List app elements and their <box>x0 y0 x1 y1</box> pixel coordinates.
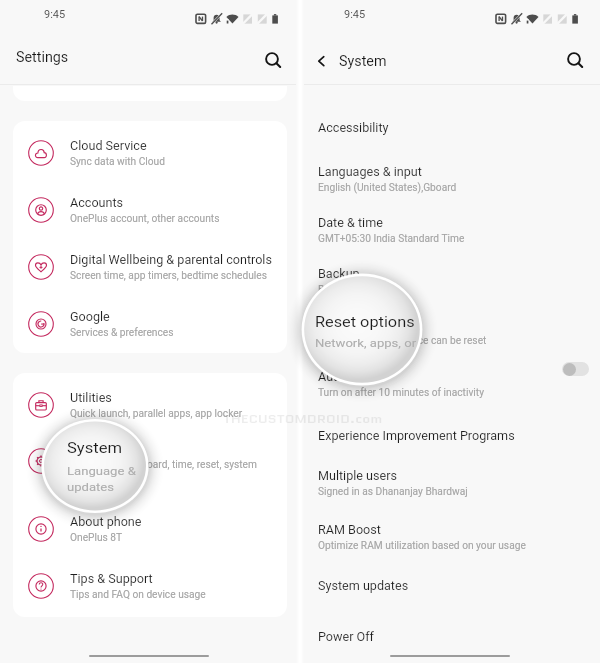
staticText: Screen time, app timers, bedtime schedul… <box>70 270 267 282</box>
staticText: Reset options <box>315 314 415 331</box>
button[interactable]: Experience Improvement Programs <box>300 418 600 448</box>
staticText: Cloud Service <box>70 138 147 153</box>
button[interactable]: Accounts <box>13 185 287 229</box>
staticText: Utilities <box>70 390 112 405</box>
staticText: Back up data <box>318 284 377 296</box>
button[interactable]: Multiple users <box>300 458 600 500</box>
button[interactable]: Back <box>308 45 336 73</box>
staticText: Reset options <box>318 317 395 332</box>
staticText: English (United States),Gboard <box>318 182 457 194</box>
button[interactable]: Power Off <box>300 619 600 649</box>
staticText: Tips & Support <box>70 571 153 586</box>
staticText: Settings <box>16 49 69 66</box>
button[interactable]: Reset options <box>300 307 600 349</box>
staticText: Accounts <box>70 195 124 210</box>
staticText: Accessibility <box>318 120 389 135</box>
staticText: Turn on after 10 minutes of inactivity <box>318 387 484 399</box>
button[interactable]: Utilities <box>13 380 287 424</box>
staticText: Language & keyboard, time, reset, system <box>67 464 146 477</box>
staticText: System <box>67 440 123 457</box>
staticText: Languages & input <box>318 164 422 179</box>
button[interactable]: Google <box>13 299 287 343</box>
button[interactable]: Tips & Support <box>13 561 287 605</box>
staticText: THECUSTOMDROID.com <box>223 410 383 428</box>
staticText: Quick launch, parallel apps, app locker <box>70 408 243 420</box>
staticText: Experience Improvement Programs <box>318 428 515 443</box>
staticText: System <box>339 53 387 70</box>
staticText: Network, apps, or device can be reset <box>315 336 420 349</box>
staticText: System updates <box>318 578 409 593</box>
button[interactable]: Digital Wellbeing & parental controls <box>13 242 287 286</box>
button[interactable]: Cloud Service <box>13 128 287 172</box>
staticText: updates <box>70 472 107 484</box>
staticText: Digital Wellbeing & parental controls <box>70 252 272 267</box>
staticText: OnePlus 8T <box>70 532 123 544</box>
staticText: Auto Sleep <box>318 369 379 384</box>
staticText: Google <box>70 309 110 324</box>
staticText: 9:45 <box>44 8 66 21</box>
staticText: 9:45 <box>344 8 366 21</box>
staticText: OnePlus account, other accounts <box>70 213 220 225</box>
button[interactable]: System <box>13 431 287 487</box>
button[interactable]: Auto Sleep <box>300 359 600 401</box>
button[interactable]: Auto Sleep toggle <box>562 362 589 376</box>
staticText: Backup <box>318 266 360 281</box>
staticText: Language & keyboard, time, reset, system <box>70 459 257 471</box>
staticText: System <box>70 441 112 456</box>
staticText: Services & preferences <box>70 327 174 339</box>
staticText: About phone <box>70 514 142 529</box>
button[interactable]: Accessibility <box>300 110 600 140</box>
staticText: Date & time <box>318 215 383 230</box>
staticText: Tips and FAQ on device usage <box>70 589 206 601</box>
staticText: GMT+05:30 India Standard Time <box>318 233 465 245</box>
button[interactable]: RAM Boost <box>300 512 600 554</box>
staticText: Multiple users <box>318 468 398 483</box>
button[interactable]: Date & time <box>300 205 600 247</box>
staticText: Signed in as Dhananjay Bhardwaj <box>318 486 468 498</box>
staticText: RAM Boost <box>318 522 381 537</box>
staticText: Sync data with Cloud <box>70 156 165 168</box>
button[interactable]: Search <box>560 45 588 73</box>
button[interactable]: Languages & input <box>300 154 600 196</box>
staticText: Power Off <box>318 629 375 644</box>
button[interactable]: Backup <box>300 256 600 298</box>
button[interactable]: Search <box>258 45 286 73</box>
staticText: Network, apps, or device can be reset <box>318 335 487 347</box>
button[interactable]: System updates <box>300 568 600 598</box>
staticText: Optimize RAM utilization based on your u… <box>318 540 526 552</box>
staticText: updates <box>67 480 115 493</box>
button[interactable]: About phone <box>13 504 287 548</box>
